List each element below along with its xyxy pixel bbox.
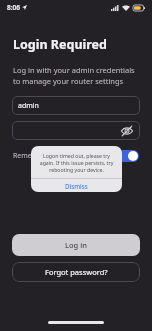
staticText: Remember me xyxy=(13,151,62,161)
staticText: 8:06 xyxy=(7,3,20,12)
staticText: Dismiss xyxy=(65,182,88,190)
button[interactable]: Show password xyxy=(120,124,134,138)
staticText: Log in with your admin credentials to ma… xyxy=(13,65,138,86)
button[interactable]: Remember me toggle xyxy=(117,150,139,162)
button[interactable]: Dismiss xyxy=(31,179,122,192)
button[interactable]: Show password xyxy=(12,121,140,140)
button[interactable]: Log in xyxy=(12,234,140,256)
staticText: Log in xyxy=(65,240,87,250)
staticText: admin xyxy=(18,101,39,111)
staticText: Forgot password? xyxy=(45,267,108,277)
button[interactable]: admin xyxy=(12,96,140,115)
button[interactable]: Forgot password? xyxy=(12,262,140,282)
staticText: Login Required xyxy=(13,36,107,53)
staticText: Logon timed out, please try again. If th… xyxy=(37,152,116,173)
